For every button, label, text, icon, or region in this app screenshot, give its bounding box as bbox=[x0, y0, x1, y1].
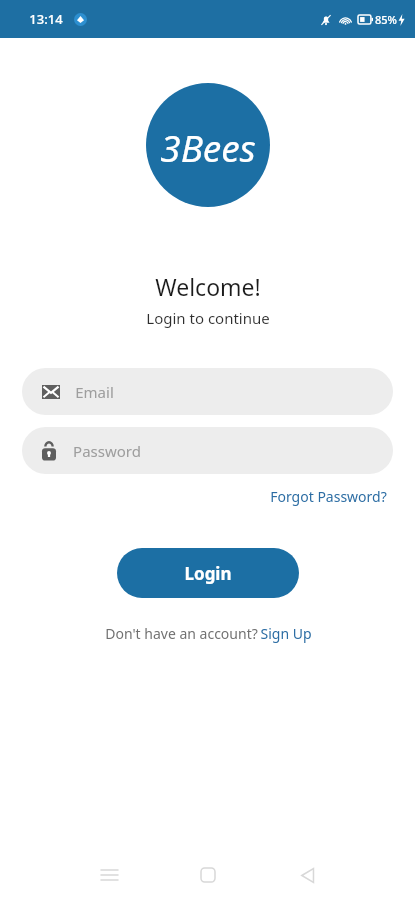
staticText: Don't have an account? bbox=[103, 624, 260, 643]
staticText: Email bbox=[75, 382, 114, 402]
staticText: Forgot Password? bbox=[270, 487, 387, 506]
staticText: Password bbox=[73, 441, 141, 461]
staticText: 3Bees bbox=[160, 122, 256, 172]
button[interactable]: Forgot Password? bbox=[266, 483, 391, 510]
button[interactable]: Home bbox=[191, 858, 225, 892]
staticText: Sign Up bbox=[260, 624, 312, 643]
button[interactable]: Back bbox=[290, 858, 324, 892]
button[interactable]: Recent apps bbox=[92, 858, 126, 892]
staticText: 13:14 bbox=[29, 10, 63, 28]
button[interactable]: Password bbox=[22, 427, 393, 474]
staticText: Login bbox=[184, 562, 232, 585]
button[interactable]: Login bbox=[117, 548, 299, 598]
staticText: Login to continue bbox=[146, 308, 270, 328]
button[interactable]: Email bbox=[22, 368, 393, 415]
button[interactable]: Sign Up bbox=[260, 624, 312, 643]
staticText: Welcome! bbox=[155, 271, 261, 302]
staticText: 85% bbox=[375, 12, 397, 27]
